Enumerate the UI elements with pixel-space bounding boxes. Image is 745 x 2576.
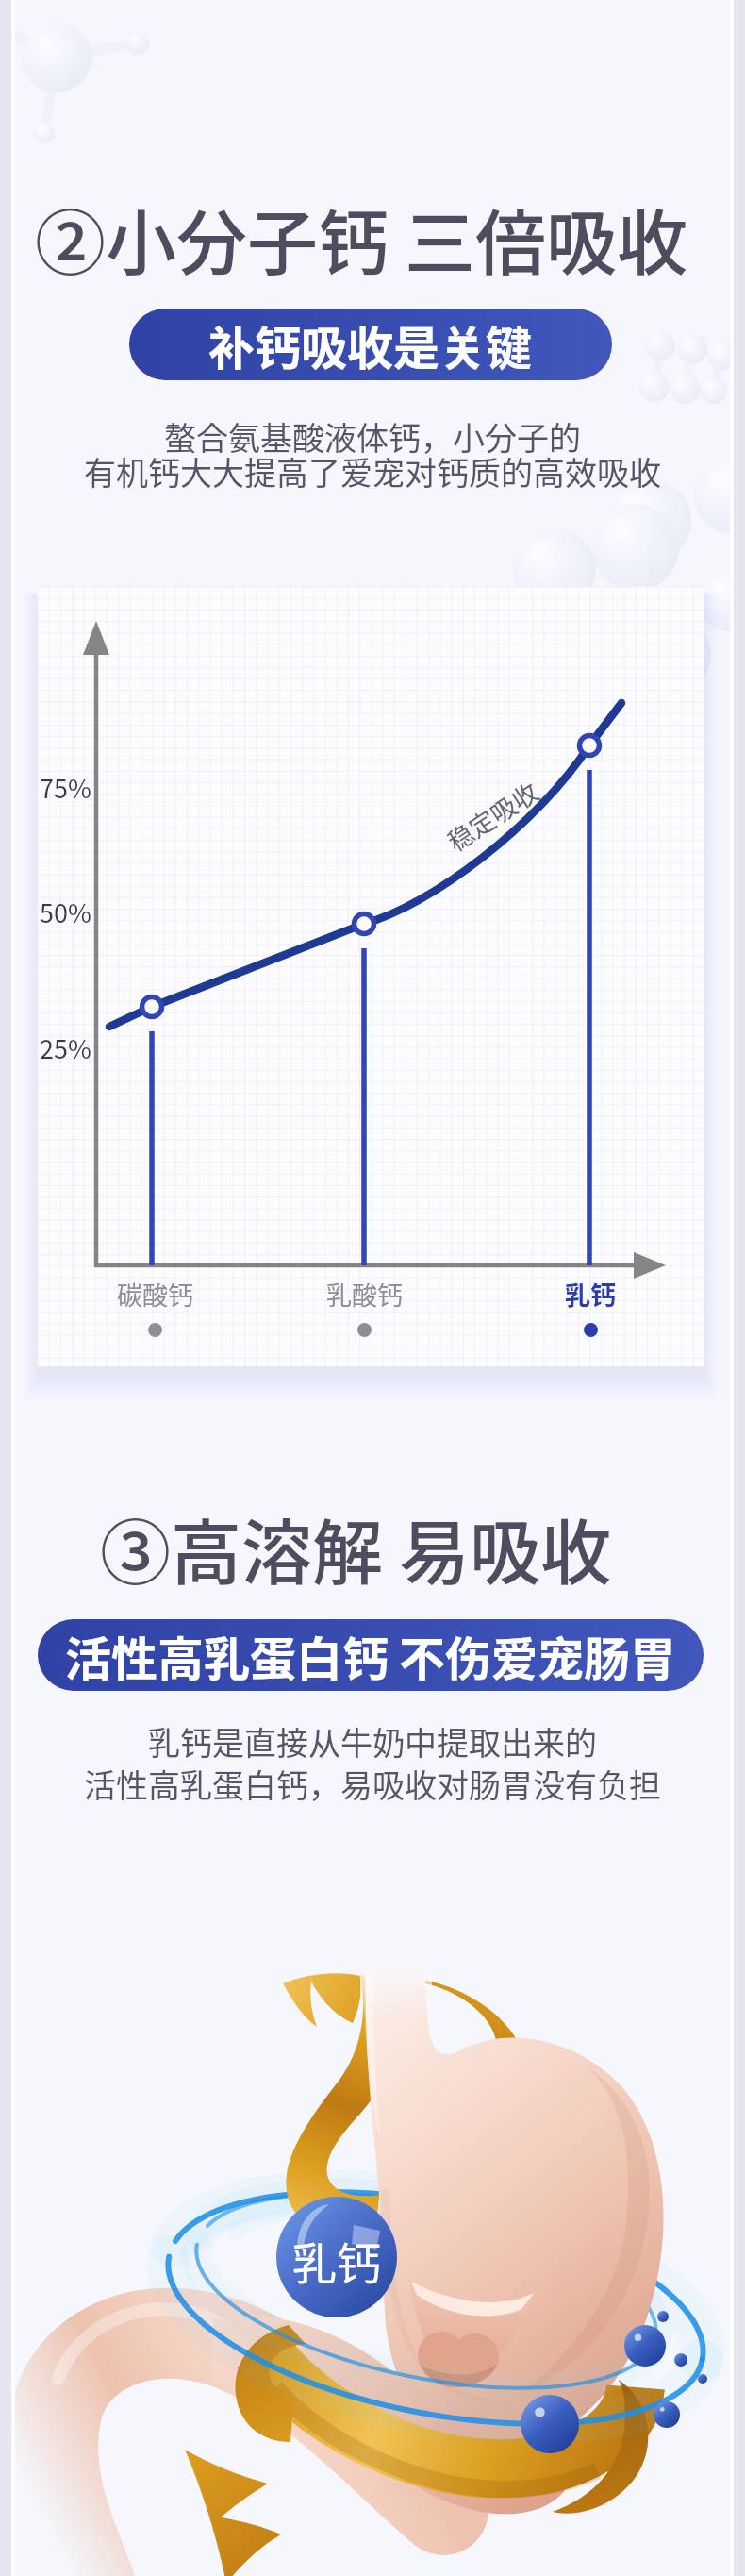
staticText: ②小分子钙 三倍吸收 [35,187,687,290]
button[interactable]: 补钙吸收是关键 [129,309,612,380]
button[interactable]: 乳酸钙 [289,1276,439,1327]
button[interactable]: 活性高乳蛋白钙 不伤爱宠肠胃 [38,1619,704,1691]
staticText: 乳钙是直接从牛奶中提取出来的 活性高乳蛋白钙，易吸收对肠胃没有负担 [84,1718,661,1807]
staticText: ③高溶解 易吸收 [100,1497,611,1599]
staticText: 乳酸钙 [326,1276,403,1313]
staticText: 25% [40,1029,91,1066]
button[interactable]: 碳酸钙 [79,1276,230,1327]
staticText: 碳酸钙 [117,1276,193,1313]
staticText: 稳定吸收 [440,773,545,859]
staticText: 乳钙 [292,2228,381,2286]
staticText: 75% [40,769,91,806]
button[interactable]: 乳钙 [515,1276,666,1327]
staticText: 螯合氨基酸液体钙，小分子的 有机钙大大提高了爱宠对钙质的高效吸收 [84,413,661,494]
staticText: 补钙吸收是关键 [208,311,533,378]
staticText: 活性高乳蛋白钙 不伤爱宠肠胃 [65,1622,677,1689]
button[interactable]: 乳钙 [280,2228,393,2286]
staticText: 乳钙 [565,1276,616,1313]
staticText: 50% [40,894,91,930]
